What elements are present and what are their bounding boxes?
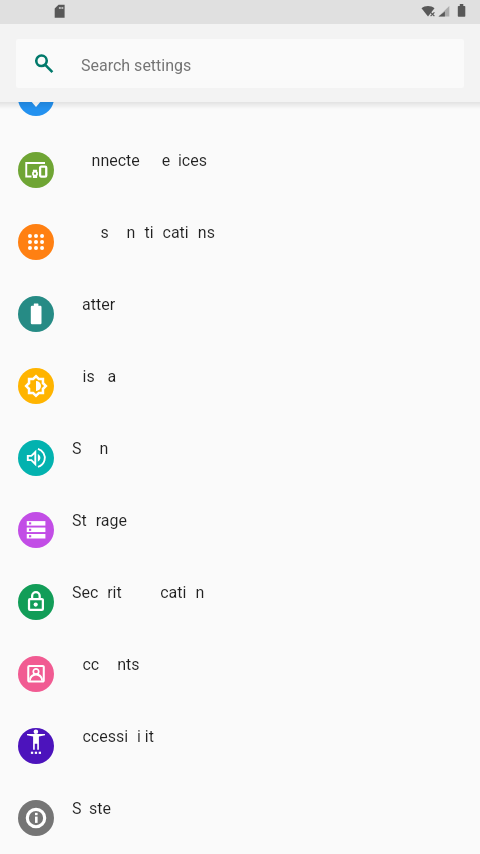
staticText: Accessibility xyxy=(72,727,162,746)
staticText: System xyxy=(72,799,126,818)
staticText: Search settings xyxy=(81,56,192,75)
staticText: Accounts xyxy=(72,655,140,674)
button[interactable]: Display xyxy=(0,350,480,422)
button[interactable]: Apps & notifications xyxy=(0,206,480,278)
button[interactable]: Search xyxy=(16,39,464,88)
button[interactable]: Battery xyxy=(0,278,480,350)
staticText: Display xyxy=(72,367,124,386)
staticText: Battery xyxy=(72,295,123,314)
staticText: Security & location xyxy=(72,583,205,602)
staticText: Storage xyxy=(72,511,127,530)
staticText: Apps & notifications xyxy=(72,223,215,242)
staticText: Network & internet xyxy=(72,79,205,98)
button[interactable]: System xyxy=(0,782,480,854)
button[interactable]: Sound xyxy=(0,422,480,494)
button[interactable]: Network & internet xyxy=(0,62,480,134)
button[interactable]: Accounts xyxy=(0,638,480,710)
button[interactable]: Accessibility xyxy=(0,710,480,782)
button[interactable]: Security & location xyxy=(0,566,480,638)
other: Search xyxy=(34,50,58,74)
button[interactable]: Connected devices xyxy=(0,134,480,206)
staticText: Sound xyxy=(72,439,118,458)
staticText: Connected devices xyxy=(72,151,207,170)
button[interactable]: Storage xyxy=(0,494,480,566)
